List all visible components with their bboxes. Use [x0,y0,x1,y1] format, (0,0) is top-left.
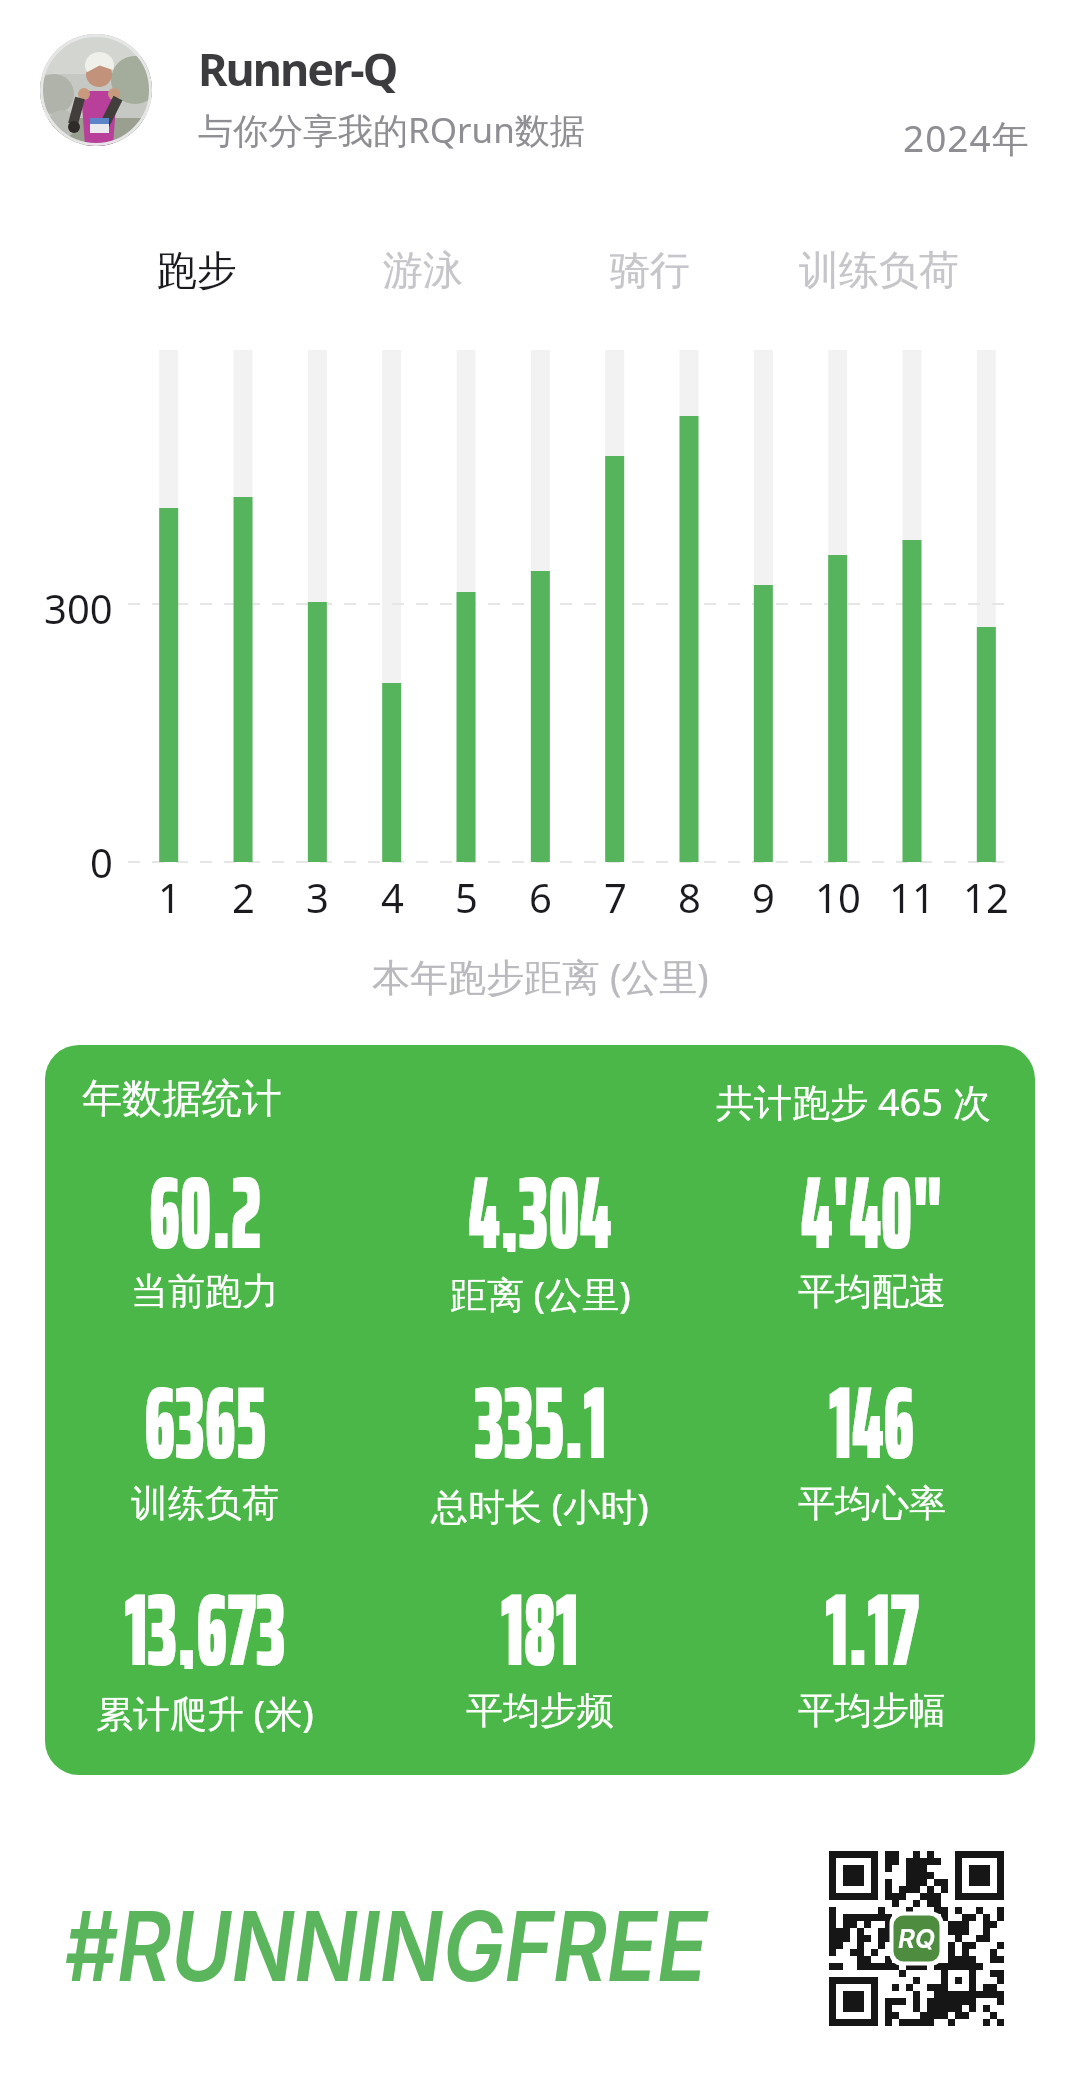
staticText: 0 [90,835,113,889]
staticText: 共计跑步 465 次 [716,1075,991,1127]
staticText: 平均步幅 [798,1687,946,1734]
staticText: 4 [381,870,404,924]
staticText: 跑步 [157,245,237,295]
staticText: 4'40" [801,1132,943,1252]
staticText: 6 [529,870,552,924]
staticText: 4,304 [468,1132,612,1252]
staticText: 10 [815,870,861,924]
staticText: 146 [829,1342,915,1462]
staticText: 3 [306,870,329,924]
staticText: 年数据统计 [82,1073,282,1123]
staticText: 与你分享我的RQrun数据 [198,106,585,154]
staticText: 训练负荷 [131,1480,279,1527]
staticText: 平均心率 [798,1480,946,1527]
staticText: 300 [44,581,113,635]
staticText: 60.2 [149,1132,262,1252]
button[interactable]: 骑行 [598,235,702,305]
staticText: 距离 (公里) [450,1268,631,1319]
button[interactable]: 跑步 [145,235,249,305]
staticText: 2024年 [903,112,1030,163]
staticText: 181 [501,1549,579,1669]
staticText: 累计爬升 (米) [96,1687,314,1738]
staticText: 平均配速 [798,1268,946,1315]
staticText: 12 [963,870,1009,924]
button[interactable] [40,34,152,146]
staticText: 游泳 [383,245,463,295]
staticText: 骑行 [610,245,690,295]
button[interactable]: 游泳 [371,235,475,305]
staticText: 13,673 [125,1549,286,1669]
staticText: 当前跑力 [131,1268,279,1315]
staticText: 总时长 (小时) [431,1480,649,1531]
staticText: 1.17 [825,1549,920,1669]
staticText: 平均步频 [466,1687,614,1734]
staticText: 11 [889,870,935,924]
button[interactable]: 训练负荷 [787,235,971,305]
staticText: 训练负荷 [799,245,959,295]
staticText: 2 [232,870,255,924]
staticText: 8 [678,870,701,924]
staticText: Runner-Q [198,38,397,99]
staticText: 5 [455,870,478,924]
staticText: 本年跑步距离 (公里) [372,950,709,1002]
staticText: 1 [158,870,181,924]
staticText: 6365 [144,1342,267,1462]
staticText: 335.1 [475,1342,606,1462]
staticText: #RUNNINGFREE [64,1888,708,2004]
button[interactable]: RQ [829,1851,1004,2026]
staticText: 9 [752,870,775,924]
staticText: RQ [898,1923,935,1954]
staticText: 7 [604,870,627,924]
